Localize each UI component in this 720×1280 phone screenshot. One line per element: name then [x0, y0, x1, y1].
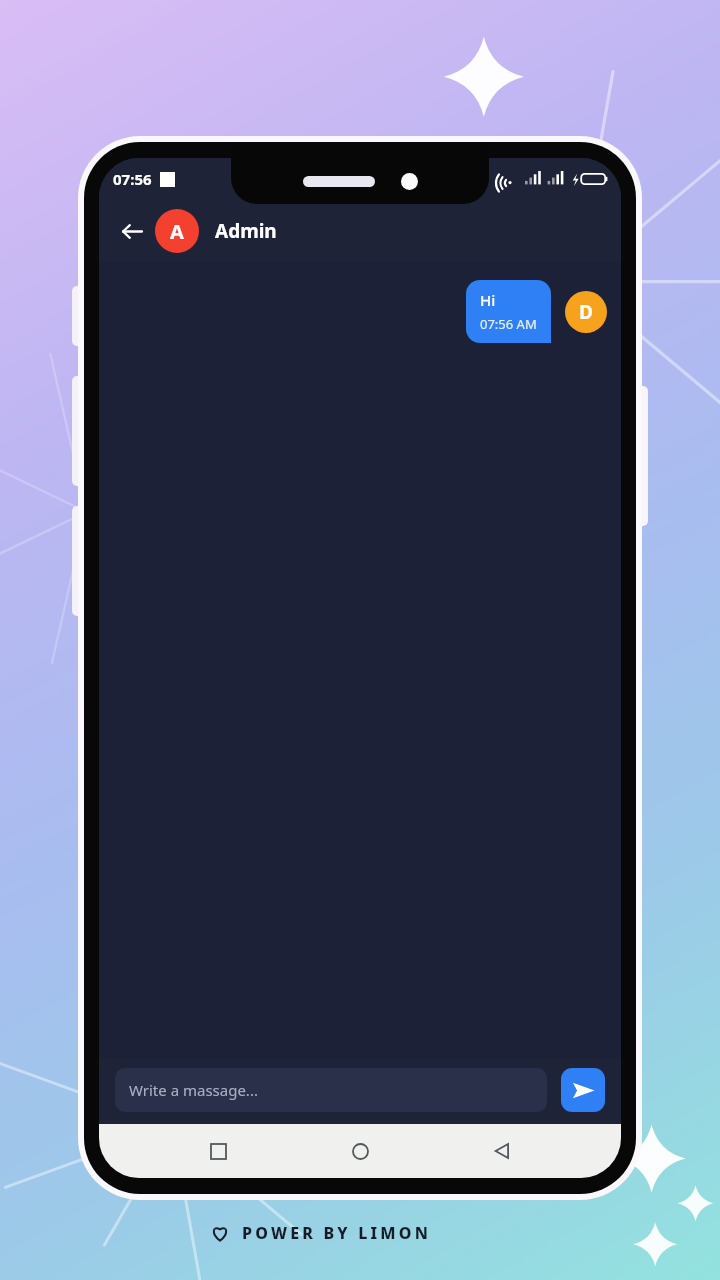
button[interactable]: Back: [111, 211, 151, 251]
staticText: 07:56: [113, 169, 152, 189]
button[interactable]: Back: [479, 1128, 525, 1174]
staticText: POWER BY LIMON: [242, 1222, 432, 1244]
button[interactable]: Recents: [195, 1128, 241, 1174]
button[interactable]: Home: [337, 1128, 383, 1174]
staticText: 07:56 AM: [480, 315, 537, 333]
button[interactable]: Sender avatar: [565, 291, 607, 333]
staticText: D: [579, 299, 593, 325]
staticText: A: [170, 218, 184, 245]
button[interactable]: Write a massage...: [115, 1068, 547, 1112]
staticText: Admin: [215, 218, 277, 244]
button[interactable]: Hi: [466, 280, 551, 343]
button[interactable]: Send: [561, 1068, 605, 1112]
staticText: Hi: [480, 290, 496, 310]
staticText: Write a massage...: [129, 1080, 258, 1100]
button[interactable]: Admin avatar: [155, 209, 199, 253]
